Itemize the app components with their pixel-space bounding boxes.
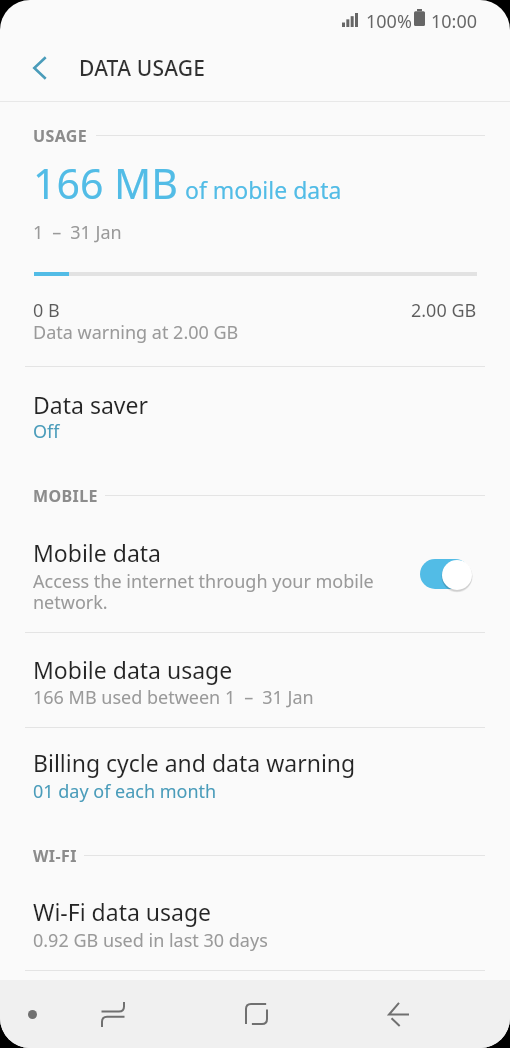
staticText: of mobile data	[185, 174, 342, 205]
staticText: Data warning at 2.00 GB	[33, 320, 239, 345]
staticText: Data saver	[33, 389, 148, 420]
staticText: 1 – 31 Jan	[33, 220, 122, 245]
staticText: USAGE	[33, 125, 88, 147]
button[interactable]: Home	[222, 980, 290, 1048]
button[interactable]: Notifications	[0, 980, 66, 1048]
staticText: Billing cycle and data warning	[33, 747, 356, 778]
button[interactable]: Wi-Fi data usage	[0, 876, 510, 970]
staticText: 10:00	[431, 9, 478, 34]
staticText: 166 MB used between 1 – 31 Jan	[33, 685, 314, 710]
staticText: 2.00 GB	[411, 298, 477, 323]
button[interactable]: Navigate up	[19, 47, 61, 89]
staticText: MOBILE	[33, 485, 98, 507]
button[interactable]: Recent apps	[79, 980, 147, 1048]
staticText: Mobile data	[33, 537, 161, 568]
staticText: 100%	[366, 9, 412, 34]
staticText: DATA USAGE	[79, 54, 206, 83]
button[interactable]: Mobile data	[0, 520, 510, 632]
button[interactable]: Mobile data usage	[0, 633, 510, 727]
button[interactable]: Mobile data	[420, 558, 474, 592]
staticText: 166 MB	[33, 155, 178, 211]
staticText: 0.92 GB used in last 30 days	[33, 928, 268, 953]
button[interactable]: Billing cycle and data warning	[0, 728, 510, 827]
staticText: Access the internet through your mobile …	[33, 569, 374, 615]
button[interactable]: Data saver	[0, 367, 510, 466]
button[interactable]: Back	[365, 980, 433, 1048]
staticText: 0 B	[33, 298, 60, 323]
staticText: WI-FI	[33, 845, 77, 867]
staticText: Off	[33, 419, 60, 444]
staticText: Wi-Fi data usage	[33, 896, 212, 927]
staticText: 01 day of each month	[33, 779, 217, 804]
staticText: Mobile data usage	[33, 654, 233, 685]
